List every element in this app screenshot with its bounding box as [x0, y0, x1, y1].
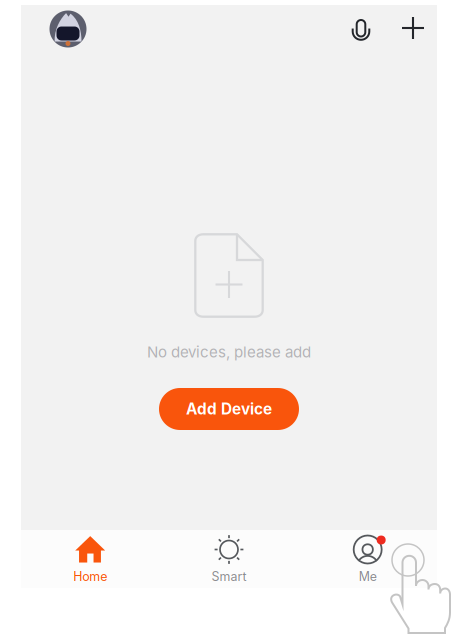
- button[interactable]: Me: [298, 530, 437, 588]
- button[interactable]: Smart: [160, 530, 298, 588]
- button[interactable]: Add Device: [159, 388, 299, 430]
- button[interactable]: Add device: [391, 5, 435, 53]
- staticText: Me: [359, 569, 377, 584]
- button[interactable]: Voice control: [353, 5, 391, 53]
- button[interactable]: Profile: [40, 5, 96, 53]
- staticText: Add Device: [186, 400, 272, 418]
- staticText: Home: [73, 569, 107, 584]
- button[interactable]: Home: [21, 530, 160, 588]
- staticText: Smart: [211, 569, 246, 584]
- staticText: No devices, please add: [147, 343, 311, 361]
